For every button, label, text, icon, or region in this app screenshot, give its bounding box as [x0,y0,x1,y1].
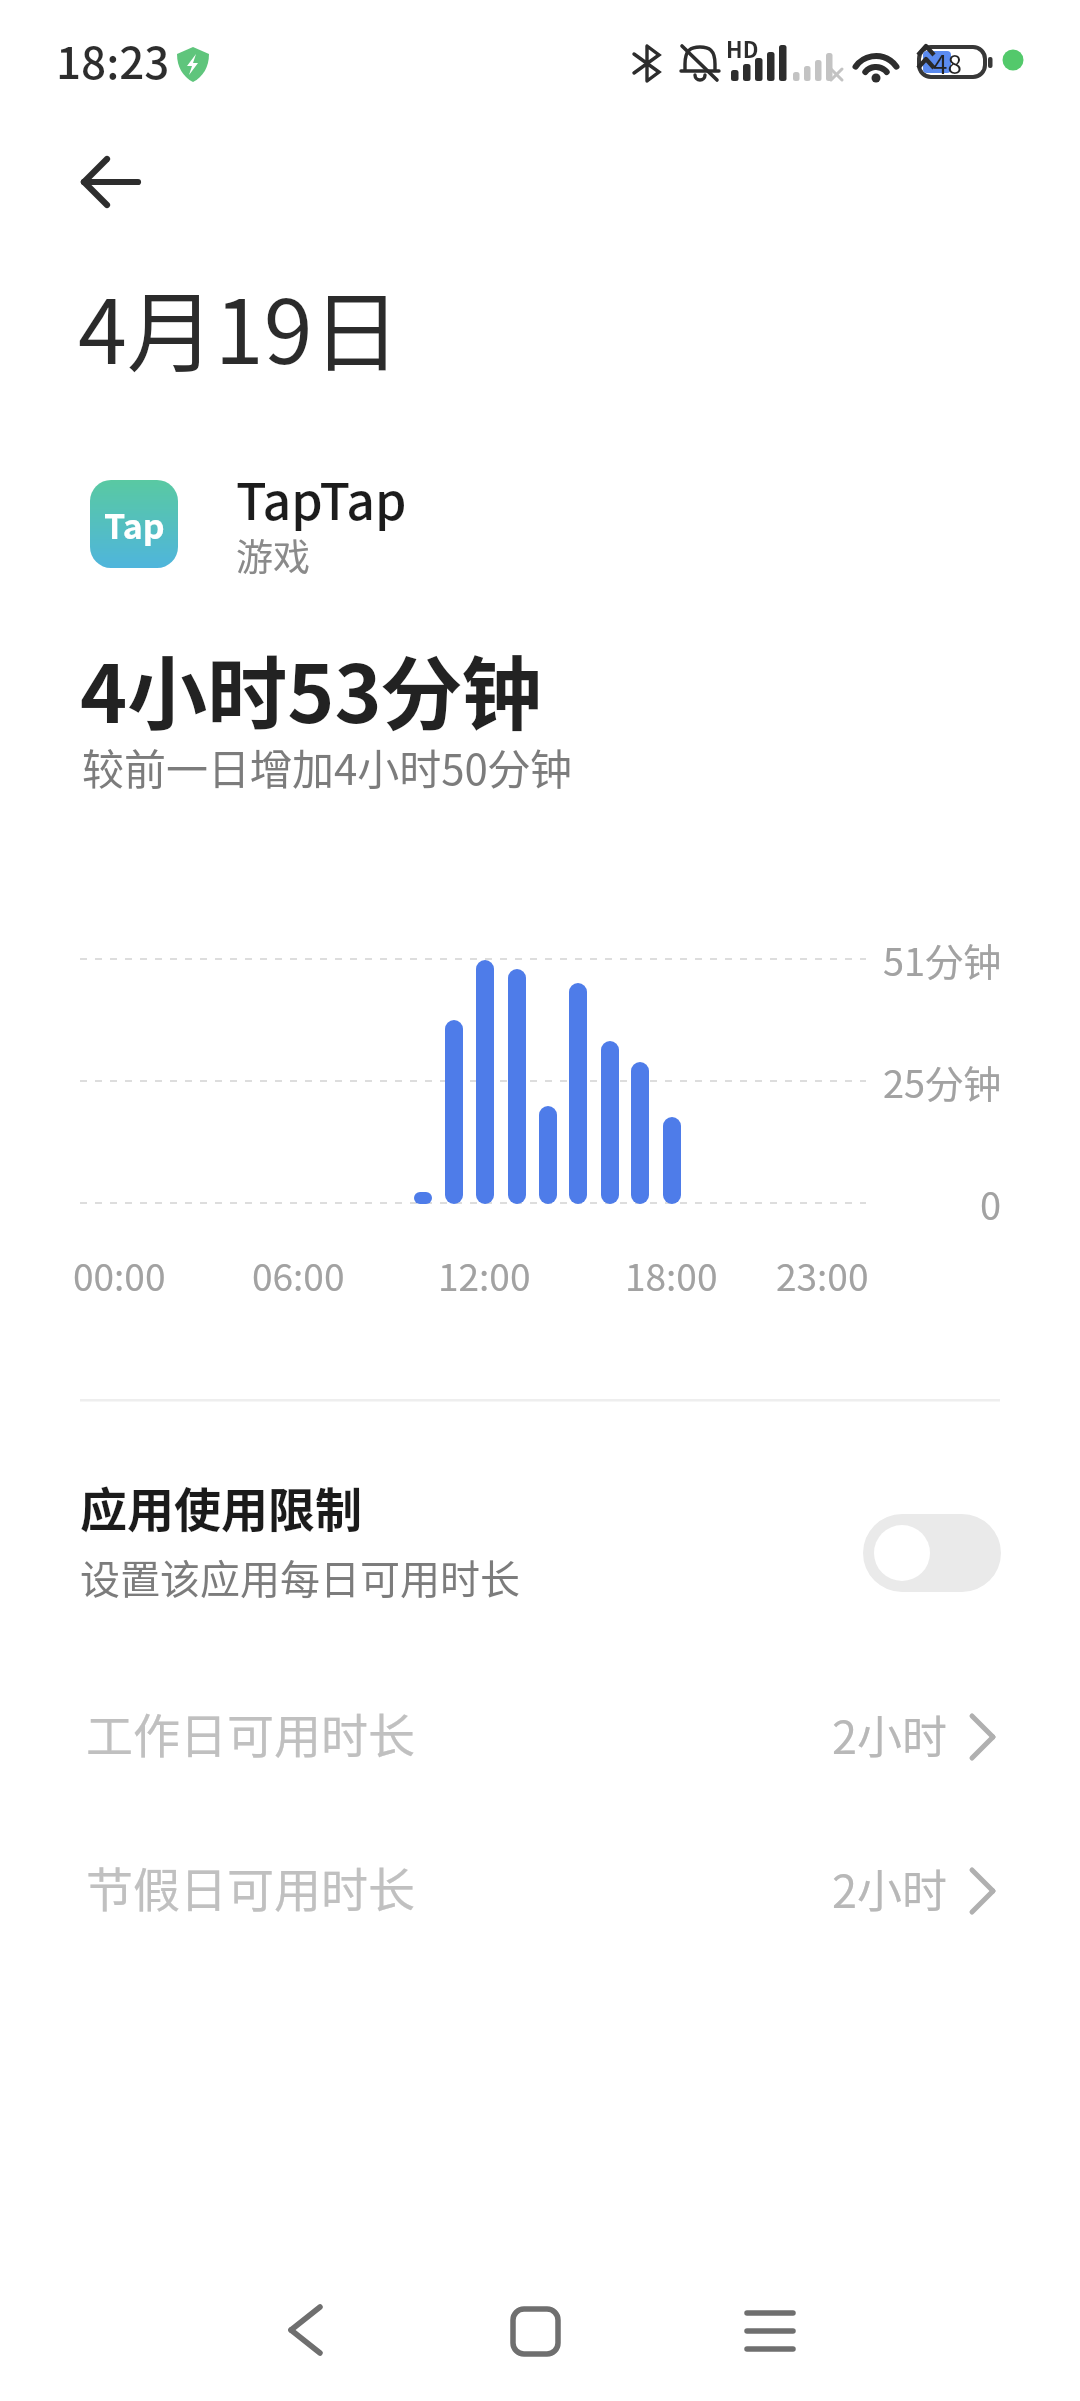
staticText: Tap [104,500,165,549]
button[interactable]: 节假日可用时长 [0,1844,1080,1940]
staticText: HD [726,32,759,64]
staticText: TapTap [236,462,407,534]
staticText: 25分钟 [883,1054,1002,1109]
staticText: 48 [933,44,962,82]
staticText: 00:00 [73,1248,166,1302]
staticText: 12:00 [438,1248,531,1302]
staticText: 2小时 [832,1702,947,1767]
staticText: 设置该应用每日可用时长 [80,1548,520,1606]
button[interactable]: 工作日可用时长 [0,1690,1080,1786]
staticText: 23:00 [776,1248,869,1302]
button[interactable] [60,140,160,224]
button[interactable] [863,1514,1001,1592]
staticText: 较前一日增加4小时50分钟 [82,736,572,797]
staticText: 游戏 [236,528,310,582]
button[interactable] [250,2280,360,2380]
staticText: 18:23 [56,28,170,92]
staticText: 应用使用限制 [80,1472,362,1540]
staticText: 工作日可用时长 [86,1698,415,1766]
staticText: 0 [980,1176,1002,1231]
staticText: 节假日可用时长 [86,1852,415,1920]
button[interactable] [715,2280,825,2380]
staticText: 4小时53分钟 [80,630,542,746]
button[interactable] [480,2280,590,2380]
staticText: 18:00 [625,1248,718,1302]
staticText: 2小时 [832,1856,947,1921]
staticText: 51分钟 [883,932,1002,987]
staticText: 06:00 [252,1248,345,1302]
staticText: 4月19日 [78,262,401,389]
